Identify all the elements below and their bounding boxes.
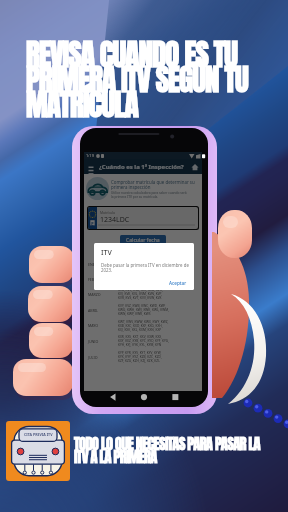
staticText: KVB, KVC, KVD, KVF, KVG, KVH, KVJ, KVK, … xyxy=(118,288,163,300)
button[interactable]: E xyxy=(88,207,198,229)
button[interactable]: MARZO xyxy=(88,286,200,302)
staticText: Utilice nuestra calculadora para saber c… xyxy=(111,191,187,199)
staticText: ITV xyxy=(101,248,112,258)
button[interactable]: Calcular fecha xyxy=(120,235,166,246)
staticText: ¿Cuándo es la 1ª Inspección? xyxy=(99,163,184,171)
staticText: ENERO xyxy=(88,262,118,267)
button[interactable]: Comprobar matrícula que determinar su pr… xyxy=(84,174,202,203)
button[interactable]: Aceptar xyxy=(167,279,189,287)
staticText: CITA PREVIA ITV xyxy=(24,432,53,437)
staticText: Matrícula xyxy=(100,210,115,215)
button[interactable]: JULIO xyxy=(88,349,200,365)
staticText: FEBRERO xyxy=(88,277,118,282)
button[interactable]: Menu xyxy=(84,159,202,174)
button[interactable]: Menu xyxy=(87,163,95,171)
staticText: TODO LO QUE NECESITAS PARA PASAR LA xyxy=(74,433,260,455)
staticText: KTB, KTC, KTD, KTF, KTG, KTH, KTJ, KTK, … xyxy=(118,261,182,269)
staticText: Aceptar xyxy=(169,280,187,286)
staticText: KYP, KYR, KYS, KYT, KYV, KYW, KYX, KYY, … xyxy=(118,351,162,363)
staticText: E xyxy=(91,221,94,228)
staticText: MARZO xyxy=(88,292,118,297)
button[interactable]: ENERO xyxy=(88,257,200,272)
staticText: KTL, KTR, KTJ, KTM, KTN, KTX, KTR, KTR, … xyxy=(118,275,177,283)
staticText: KXR, KXS, KXT, KXV, KXW, KXX, KXY, KXZ, … xyxy=(118,335,169,347)
staticText: ITV A LA PRIMERA xyxy=(74,446,157,468)
staticText: Calcular fecha xyxy=(126,237,160,244)
staticText: KVY, KVZ, KWB, KWC, KWD, KWF, KWG, KWH, … xyxy=(118,304,169,316)
staticText: JULIO xyxy=(88,355,118,360)
staticText: 1234LDC xyxy=(100,215,130,225)
staticText: REVISA CUANDO ES TU xyxy=(26,33,238,77)
button[interactable]: JUNIO xyxy=(88,333,200,349)
staticText: JUNIO xyxy=(88,339,118,344)
staticText: PRIMERA ITV SEGÚN TU xyxy=(26,58,248,102)
staticText: MAYO xyxy=(88,323,118,328)
staticText: 1:19 xyxy=(86,153,94,158)
staticText: ABRIL xyxy=(88,308,118,313)
staticText: Comprobar matrícula que determinar su pr… xyxy=(111,179,199,190)
button[interactable]: ABRIL xyxy=(88,302,200,318)
button[interactable]: Home xyxy=(191,163,199,171)
staticText: MATRÍCULA xyxy=(26,83,138,127)
staticText: KWT, KWV, KWW, KWX, KWY, KWZ, KXB, KXC, … xyxy=(118,320,169,332)
staticText: Debe pasar la primera ITV en diciembre d… xyxy=(101,262,189,274)
button[interactable]: FEBRERO xyxy=(88,272,200,286)
button[interactable]: Cita Previa ITV app icon xyxy=(6,421,70,481)
button[interactable]: MAYO xyxy=(88,318,200,333)
